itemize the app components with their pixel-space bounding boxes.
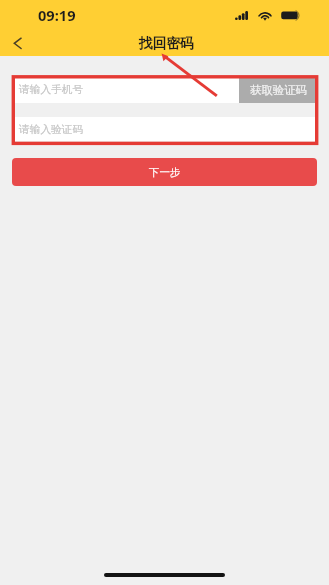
button[interactable]: 下一步	[12, 158, 317, 186]
button[interactable]: Back	[7, 31, 29, 53]
button[interactable]: 请输入验证码	[12, 117, 317, 141]
button[interactable]: 获取验证码	[239, 76, 317, 103]
staticText: 找回密码	[139, 35, 194, 52]
staticText: 请输入验证码	[19, 123, 84, 136]
staticText: 请输入手机号	[19, 83, 84, 96]
staticText: 下一步	[149, 166, 181, 179]
button[interactable]: 请输入手机号	[12, 76, 317, 103]
staticText: 获取验证码	[250, 83, 307, 97]
staticText: 09:19	[38, 5, 76, 25]
